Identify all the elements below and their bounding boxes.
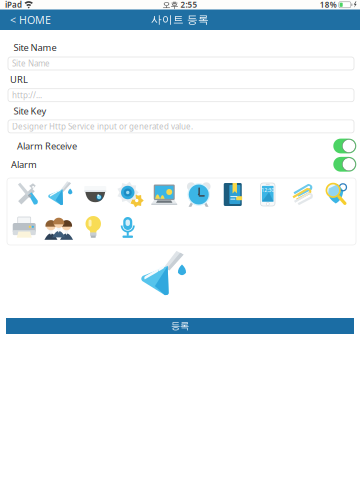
button[interactable]: Icon — [285, 178, 319, 211]
button[interactable]: Icon — [319, 178, 354, 211]
staticText: 등록 — [171, 320, 189, 332]
staticText: iPad — [5, 0, 22, 10]
button[interactable]: http://... — [8, 89, 354, 102]
button[interactable]: Designer Http Service input or generated… — [8, 120, 354, 133]
staticText: 사이트 등록 — [151, 13, 209, 26]
staticText: Designer Http Service input or generated… — [12, 121, 193, 132]
button[interactable]: Icon — [216, 178, 250, 211]
button[interactable]: Icon — [43, 178, 78, 211]
button[interactable]: Alarm Receive — [333, 139, 356, 153]
button[interactable]: 등록 — [6, 318, 354, 334]
staticText: 오후 2:55 — [162, 0, 197, 10]
button[interactable]: < HOME — [0, 9, 61, 30]
button[interactable]: Icon — [181, 178, 216, 211]
staticText: 12:30 — [261, 186, 274, 193]
button[interactable]: Icon — [110, 211, 145, 244]
staticText: Site Name — [12, 58, 50, 69]
button[interactable]: Alarm — [333, 157, 356, 172]
staticText: Alarm — [11, 158, 37, 170]
button[interactable]: Icon — [250, 178, 285, 211]
staticText: 18% — [320, 0, 337, 10]
staticText: < HOME — [10, 13, 51, 27]
button[interactable]: Icon — [147, 178, 181, 211]
staticText: Site Key — [13, 105, 46, 117]
staticText: Alarm Receive — [17, 140, 77, 152]
staticText: http://... — [12, 90, 42, 100]
button[interactable]: Icon — [9, 178, 43, 211]
button[interactable]: Icon — [76, 211, 110, 244]
button[interactable]: Icon — [7, 211, 41, 244]
button[interactable]: Site Name — [8, 57, 354, 70]
button[interactable]: Icon — [112, 178, 147, 211]
staticText: URL — [10, 73, 28, 86]
staticText: Site Name — [13, 41, 56, 54]
button[interactable]: Icon — [41, 211, 76, 244]
button[interactable]: Icon — [78, 178, 112, 211]
